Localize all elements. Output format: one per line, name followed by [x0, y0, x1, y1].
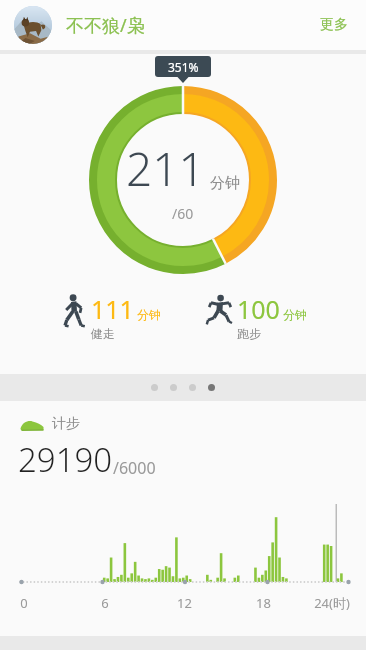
button[interactable]: Page 4	[208, 384, 215, 391]
staticText: 健走	[91, 326, 115, 341]
button[interactable]: 351%	[0, 54, 366, 374]
button[interactable]: Running	[205, 292, 307, 341]
other: Running	[205, 292, 235, 328]
staticText: 24(时)	[314, 594, 350, 612]
button[interactable]: Walking	[59, 292, 161, 341]
staticText: 351%	[168, 59, 199, 75]
staticText: 不不狼/枭	[66, 13, 145, 38]
staticText: 更多	[320, 16, 348, 34]
button[interactable]: Steps	[0, 401, 366, 636]
staticText: 分钟	[210, 174, 240, 193]
staticText: /6000	[113, 457, 156, 479]
staticText: 跑步	[237, 326, 261, 341]
button[interactable]: Profile avatar	[14, 6, 52, 44]
staticText: 分钟	[283, 307, 307, 322]
button[interactable]: 更多	[316, 10, 352, 40]
staticText: 计步	[52, 415, 80, 433]
other: Steps	[20, 416, 44, 432]
other: Walking	[59, 292, 89, 328]
staticText: 100	[237, 292, 280, 326]
staticText: 18	[256, 594, 271, 612]
staticText: 分钟	[137, 307, 161, 322]
button[interactable]: Page 3	[189, 384, 196, 391]
staticText: 12	[177, 594, 192, 612]
button[interactable]: 不不狼/枭	[66, 13, 145, 38]
button[interactable]: Page 1	[151, 384, 158, 391]
staticText: 6	[101, 594, 109, 612]
staticText: 111	[91, 292, 134, 326]
staticText: 29190	[18, 437, 113, 482]
button[interactable]: Page 2	[170, 384, 177, 391]
staticText: 0	[20, 594, 28, 612]
staticText: 211	[126, 137, 205, 200]
staticText: /60	[172, 204, 194, 223]
